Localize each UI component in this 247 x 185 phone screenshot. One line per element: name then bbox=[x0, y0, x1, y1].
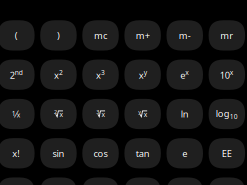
staticText: x bbox=[144, 110, 148, 119]
staticText: ex bbox=[180, 68, 189, 81]
button[interactable]: e to the power x bbox=[166, 59, 203, 90]
button[interactable]: x cubed bbox=[82, 59, 119, 90]
button[interactable]: natural logarithm bbox=[166, 99, 203, 129]
button[interactable]: y-th root of x bbox=[124, 99, 161, 129]
button[interactable]: hyperbolic tangent bbox=[124, 177, 161, 185]
button[interactable]: hyperbolic cosine bbox=[82, 177, 119, 185]
button[interactable]: euler's number bbox=[166, 138, 203, 168]
button[interactable]: close parenthesis bbox=[40, 20, 77, 50]
button[interactable]: x to the power y bbox=[124, 59, 161, 90]
staticText: y bbox=[138, 108, 141, 116]
staticText: x3 bbox=[96, 68, 105, 81]
staticText: mr bbox=[220, 29, 233, 42]
button[interactable]: ten to the power x bbox=[209, 59, 245, 90]
staticText: log10 bbox=[216, 107, 238, 121]
button[interactable]: memory clear bbox=[82, 20, 119, 50]
button[interactable]: second function bbox=[0, 59, 35, 90]
button[interactable]: exponent bbox=[209, 138, 245, 168]
staticText: x! bbox=[12, 147, 20, 159]
button[interactable]: pi bbox=[166, 177, 203, 185]
staticText: 2nd bbox=[10, 68, 23, 81]
staticText: 1⁄x bbox=[12, 108, 21, 120]
staticText: xy bbox=[139, 68, 147, 81]
staticText: 3 bbox=[96, 108, 99, 116]
button[interactable]: sine bbox=[40, 138, 77, 168]
button[interactable]: cube root of x bbox=[82, 99, 119, 129]
staticText: ( bbox=[15, 29, 18, 42]
button[interactable]: one divided by x bbox=[0, 99, 35, 129]
staticText: x bbox=[101, 110, 105, 119]
staticText: ) bbox=[57, 29, 60, 42]
staticText: m- bbox=[179, 29, 191, 42]
staticText: tan bbox=[136, 147, 150, 159]
staticText: 10x bbox=[220, 68, 234, 81]
staticText: 2 bbox=[54, 108, 57, 116]
button[interactable]: radians bbox=[0, 177, 35, 185]
staticText: x bbox=[59, 110, 63, 119]
staticText: sin bbox=[52, 147, 64, 159]
button[interactable]: square root of x bbox=[40, 99, 77, 129]
button[interactable]: memory recall bbox=[209, 20, 245, 50]
button[interactable]: logarithm base ten bbox=[209, 99, 245, 129]
button[interactable]: x factorial bbox=[0, 138, 35, 168]
button[interactable]: memory subtract bbox=[166, 20, 203, 50]
staticText: EE bbox=[222, 147, 232, 159]
staticText: cos bbox=[93, 147, 107, 159]
button[interactable]: cosine bbox=[82, 138, 119, 168]
staticText: ln bbox=[181, 108, 189, 120]
staticText: m+ bbox=[136, 29, 150, 42]
button[interactable]: random bbox=[209, 177, 245, 185]
button[interactable]: tangent bbox=[124, 138, 161, 168]
staticText: x2 bbox=[54, 68, 63, 81]
button[interactable]: memory add bbox=[124, 20, 161, 50]
staticText: mc bbox=[94, 29, 107, 42]
button[interactable]: x squared bbox=[40, 59, 77, 90]
staticText: e bbox=[182, 147, 187, 159]
button[interactable]: hyperbolic sine bbox=[40, 177, 77, 185]
button[interactable]: open parenthesis bbox=[0, 20, 35, 50]
